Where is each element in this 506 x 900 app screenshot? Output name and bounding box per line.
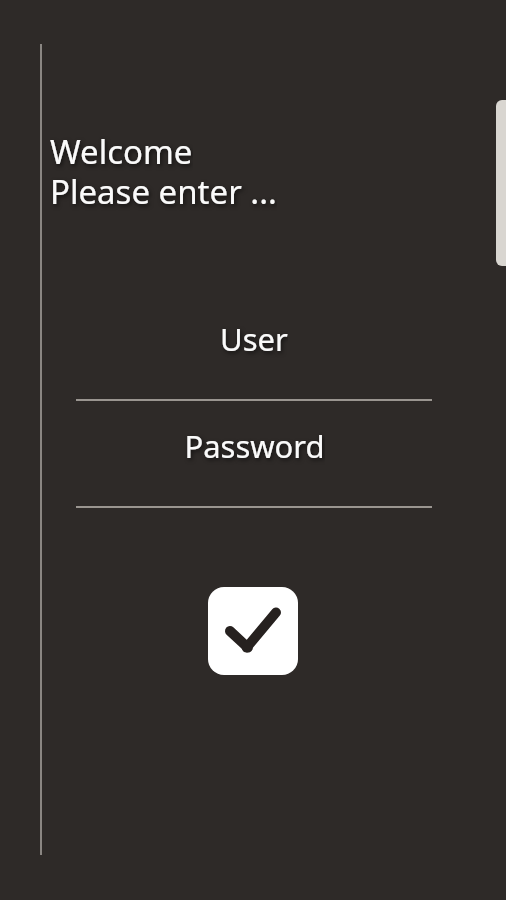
button[interactable]: Confirm login	[208, 587, 298, 675]
staticText: User	[220, 318, 288, 358]
staticText: Password	[184, 425, 325, 465]
staticText: Please enter ...	[50, 169, 277, 211]
button[interactable]: Password	[76, 419, 432, 508]
button[interactable]: User	[76, 312, 432, 401]
staticText: Welcome	[50, 129, 193, 171]
